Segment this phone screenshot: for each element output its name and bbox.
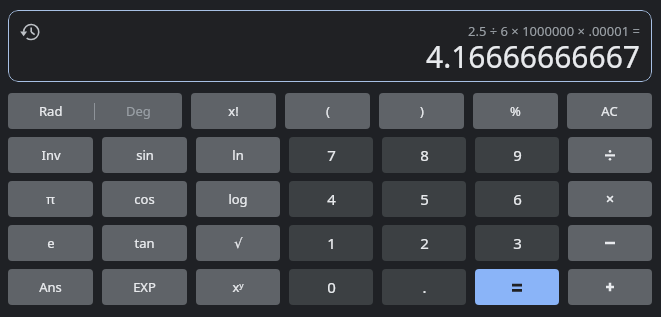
staticText: 4 [327, 189, 336, 209]
staticText: π [46, 190, 55, 208]
button[interactable]: Deg [95, 93, 182, 129]
staticText: 8 [420, 145, 429, 165]
staticText: EXP [133, 278, 156, 296]
staticText: cos [134, 190, 155, 208]
staticText: Rad [39, 102, 63, 120]
button[interactable]: tan [102, 225, 187, 261]
button[interactable]: AC [567, 93, 652, 129]
staticText: e [47, 234, 55, 252]
button[interactable]: π [8, 181, 93, 217]
staticText: log [228, 190, 248, 208]
staticText: 6 [513, 189, 522, 209]
staticText: % [510, 102, 521, 120]
button[interactable]: EXP [102, 269, 187, 305]
staticText: xʸ [232, 278, 244, 296]
staticText: tan [134, 234, 155, 252]
button[interactable]: 7 [289, 137, 373, 173]
button[interactable]: 0 [289, 269, 373, 305]
button[interactable]: ) [379, 93, 464, 129]
button[interactable]: Divide [568, 137, 652, 173]
button[interactable]: 5 [382, 181, 466, 217]
staticText: 3 [513, 233, 522, 253]
staticText: 0 [327, 277, 336, 297]
button[interactable]: xʸ [196, 269, 280, 305]
button[interactable]: x! [191, 93, 276, 129]
staticText: 7 [327, 145, 336, 165]
button[interactable]: Plus [568, 269, 652, 305]
staticText: Deg [126, 102, 151, 120]
staticText: 2.5 ÷ 6 × 1000000 × .00001 = [468, 22, 640, 40]
button[interactable]: Inv [8, 137, 93, 173]
staticText: Ans [39, 278, 62, 296]
staticText: sin [136, 146, 154, 164]
staticText: x! [228, 102, 239, 120]
button[interactable]: 1 [289, 225, 373, 261]
button[interactable]: ln [196, 137, 280, 173]
button[interactable]: Multiply [568, 181, 652, 217]
button[interactable]: 2 [382, 225, 466, 261]
button[interactable]: . [382, 269, 466, 305]
staticText: ) [420, 102, 424, 120]
staticText: . [422, 277, 427, 297]
button[interactable]: sin [102, 137, 187, 173]
staticText: Inv [41, 146, 61, 164]
staticText: ln [232, 146, 244, 164]
button[interactable]: Equals [475, 269, 559, 305]
button[interactable]: √ [196, 225, 280, 261]
button[interactable]: Minus [568, 225, 652, 261]
staticText: √ [234, 236, 243, 251]
staticText: AC [601, 102, 618, 120]
button[interactable]: log [196, 181, 280, 217]
button[interactable]: 8 [382, 137, 466, 173]
staticText: 9 [513, 145, 522, 165]
staticText: 4.16666666667 [426, 36, 640, 77]
staticText: ( [326, 102, 330, 120]
button[interactable]: 3 [475, 225, 559, 261]
button[interactable]: % [473, 93, 558, 129]
button[interactable]: e [8, 225, 93, 261]
staticText: 2 [420, 233, 429, 253]
button[interactable]: Ans [8, 269, 93, 305]
staticText: 5 [420, 189, 429, 209]
button[interactable]: 9 [475, 137, 559, 173]
button[interactable]: 6 [475, 181, 559, 217]
button[interactable]: 4 [289, 181, 373, 217]
button[interactable]: History [20, 22, 40, 42]
button[interactable]: Rad [8, 93, 94, 129]
staticText: 1 [327, 233, 336, 253]
button[interactable]: cos [102, 181, 187, 217]
button[interactable]: ( [285, 93, 370, 129]
